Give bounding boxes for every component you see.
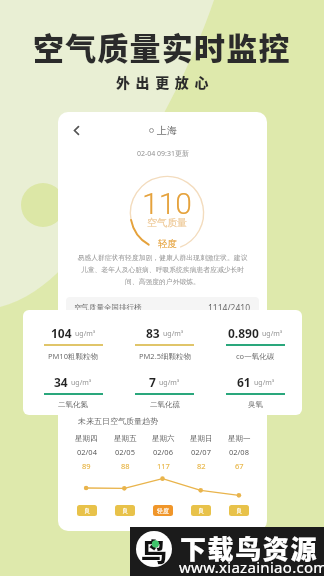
staticText: 0.890 — [228, 325, 259, 341]
staticText: ug/m³ — [75, 329, 96, 339]
staticText: 34 — [54, 374, 68, 390]
staticText: 空气质量 — [147, 216, 187, 229]
staticText: 空气质量实时监控 — [33, 24, 291, 69]
button[interactable]: 0.890 — [210, 325, 301, 361]
staticText: 02/05 — [115, 447, 135, 457]
staticText: 02/07 — [191, 447, 211, 457]
staticText: 未来五日空气质量趋势 — [78, 416, 158, 426]
button[interactable]: 104 — [27, 325, 119, 361]
button[interactable]: 7 — [119, 374, 210, 409]
staticText: 7 — [149, 374, 156, 390]
staticText: 67 — [235, 461, 244, 471]
staticText: 轻度 — [158, 238, 177, 250]
staticText: 02/04 — [77, 447, 97, 457]
staticText: 星期一 — [228, 434, 251, 443]
staticText: 良 — [236, 507, 242, 515]
staticText: 88 — [121, 461, 130, 471]
button[interactable]: 良 — [229, 505, 249, 516]
staticText: 星期五 — [114, 434, 137, 443]
button[interactable]: 34 — [27, 374, 119, 409]
staticText: ug/m³ — [254, 378, 275, 388]
button[interactable]: 轻度 — [153, 505, 173, 516]
staticText: PM10粗颗粒物 — [48, 351, 98, 361]
staticText: 星期四 — [75, 434, 98, 443]
staticText: 02/08 — [229, 447, 249, 457]
staticText: 空气质量全国排行榜 — [74, 303, 142, 312]
button[interactable]: 良 — [77, 505, 97, 516]
staticText: 上海 — [157, 124, 177, 137]
button[interactable]: 良 — [115, 505, 135, 516]
staticText: 轻度 — [157, 507, 169, 515]
staticText: 02/06 — [153, 447, 173, 457]
staticText: 臭氧 — [248, 400, 263, 409]
staticText: 星期六 — [152, 434, 175, 443]
staticText: 104 — [51, 325, 72, 341]
staticText: 117 — [157, 461, 170, 471]
staticText: 易感人群症状有轻度加剧，健康人群出现刺激症状。建议儿童、老年人及心脏病、呼吸系统… — [76, 253, 249, 286]
staticText: ug/m³ — [163, 329, 184, 339]
staticText: 良 — [122, 507, 128, 515]
staticText: 83 — [146, 325, 160, 341]
staticText: 110 — [142, 186, 192, 221]
staticText: 82 — [197, 461, 206, 471]
staticText: 下载鸟资源 — [180, 529, 319, 567]
staticText: www.xiazainiao.com — [179, 557, 324, 576]
button[interactable]: 空气质量全国排行榜 — [66, 297, 259, 318]
staticText: 61 — [237, 374, 251, 390]
staticText: 良 — [84, 507, 90, 515]
staticText: 良 — [198, 507, 204, 515]
staticText: 星期日 — [190, 434, 213, 443]
staticText: ug/m³ — [262, 329, 283, 339]
button[interactable]: Back — [64, 118, 88, 142]
staticText: 89 — [82, 461, 91, 471]
staticText: co一氧化碳 — [236, 351, 275, 361]
button[interactable]: 良 — [191, 505, 211, 516]
staticText: 02-04 09:31更新 — [137, 149, 189, 159]
staticText: 1114/2410 — [208, 302, 251, 314]
staticText: 二氧化硫 — [150, 400, 180, 409]
staticText: 鸟 — [141, 532, 168, 567]
staticText: PM2.5细颗粒物 — [139, 351, 191, 361]
staticText: ug/m³ — [71, 378, 92, 388]
staticText: 外出更放心 — [116, 72, 214, 92]
button[interactable]: 83 — [119, 325, 210, 361]
staticText: 二氧化氮 — [58, 400, 88, 409]
staticText: ug/m³ — [159, 378, 180, 388]
button[interactable]: 61 — [210, 374, 301, 409]
